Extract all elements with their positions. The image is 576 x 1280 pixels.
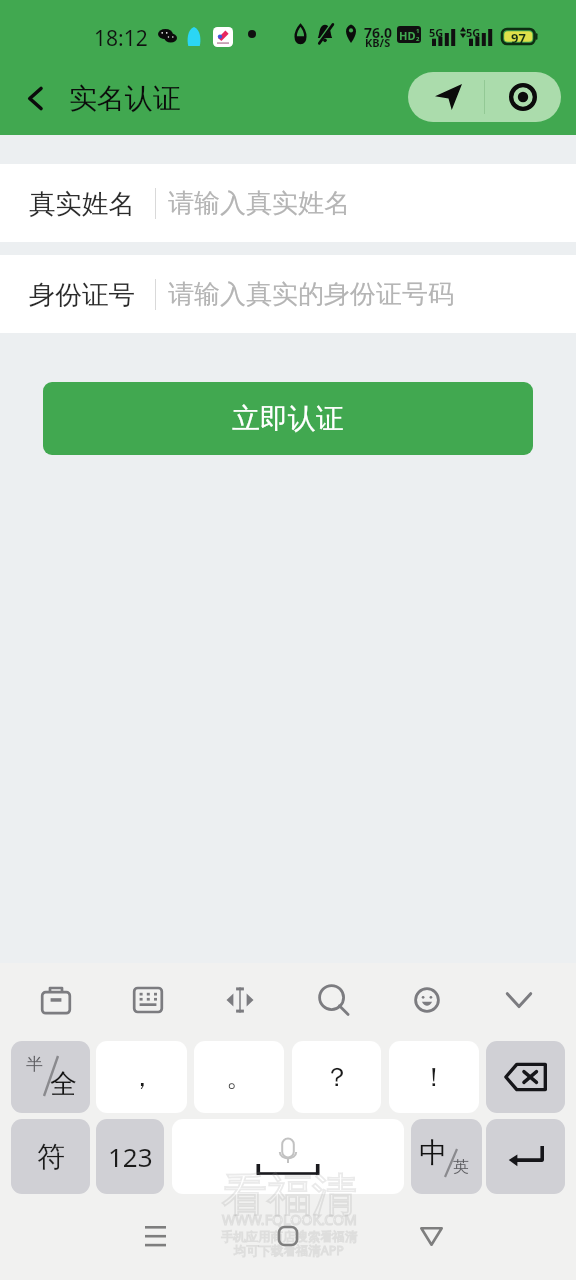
- staticText: 5G: [466, 25, 481, 40]
- staticText: 均可下载看福清APP: [234, 1242, 344, 1259]
- button[interactable]: 半: [11, 1041, 90, 1113]
- staticText: 18:12: [94, 24, 148, 53]
- button[interactable]: ！: [389, 1041, 479, 1113]
- button[interactable]: Delete: [486, 1041, 565, 1113]
- staticText: 123: [108, 1139, 153, 1174]
- staticText: ，: [129, 1061, 155, 1094]
- staticText: 符: [37, 1139, 65, 1174]
- button[interactable]: 。: [194, 1041, 284, 1113]
- button[interactable]: 真实姓名: [0, 164, 576, 242]
- staticText: 5G: [429, 25, 444, 40]
- button[interactable]: 立即认证: [43, 382, 533, 455]
- staticText: 看福清: [222, 1167, 357, 1224]
- button[interactable]: Space: [172, 1119, 404, 1194]
- button[interactable]: Move cursor: [214, 974, 266, 1026]
- button[interactable]: Menu: [485, 72, 561, 122]
- button[interactable]: Location: [408, 72, 484, 122]
- staticText: 身份证号: [29, 278, 135, 311]
- staticText: 立即认证: [232, 401, 344, 436]
- staticText: 请输入真实的身份证号码: [168, 278, 454, 311]
- staticText: 76.0: [364, 23, 392, 38]
- staticText: 1: [416, 27, 420, 35]
- button[interactable]: 123: [96, 1119, 164, 1194]
- staticText: ！: [421, 1061, 447, 1094]
- button[interactable]: Search: [308, 974, 360, 1026]
- staticText: 97: [511, 29, 526, 44]
- button[interactable]: 身份证号: [0, 255, 576, 333]
- button[interactable]: Back: [8, 62, 62, 135]
- staticText: 英: [453, 1157, 469, 1177]
- staticText: 手机应用商店搜索看福清: [221, 1229, 358, 1245]
- button[interactable]: 中: [411, 1119, 482, 1194]
- button[interactable]: Clipboard: [30, 974, 82, 1026]
- staticText: 全: [50, 1067, 77, 1101]
- staticText: 2: [416, 35, 420, 43]
- staticText: 半: [26, 1054, 43, 1075]
- button[interactable]: Recent apps: [125, 1212, 185, 1260]
- staticText: WWW.FQLOOK.COM: [222, 1210, 357, 1229]
- staticText: 中: [419, 1135, 447, 1170]
- button[interactable]: ，: [96, 1041, 187, 1113]
- button[interactable]: Emoji: [401, 974, 453, 1026]
- button[interactable]: Home: [263, 1212, 313, 1260]
- staticText: 真实姓名: [29, 187, 135, 220]
- staticText: 请输入真实姓名: [168, 187, 350, 220]
- staticText: 实名认证: [69, 81, 181, 116]
- button[interactable]: Enter: [486, 1119, 565, 1194]
- staticText: ？: [324, 1061, 350, 1094]
- button[interactable]: ？: [292, 1041, 381, 1113]
- button[interactable]: Keyboard layout: [122, 974, 174, 1026]
- staticText: HD: [399, 28, 416, 43]
- button[interactable]: Back: [406, 1212, 456, 1260]
- staticText: KB/S: [365, 35, 391, 47]
- button[interactable]: 符: [11, 1119, 90, 1194]
- button[interactable]: Hide keyboard: [493, 974, 545, 1026]
- staticText: 。: [226, 1061, 252, 1094]
